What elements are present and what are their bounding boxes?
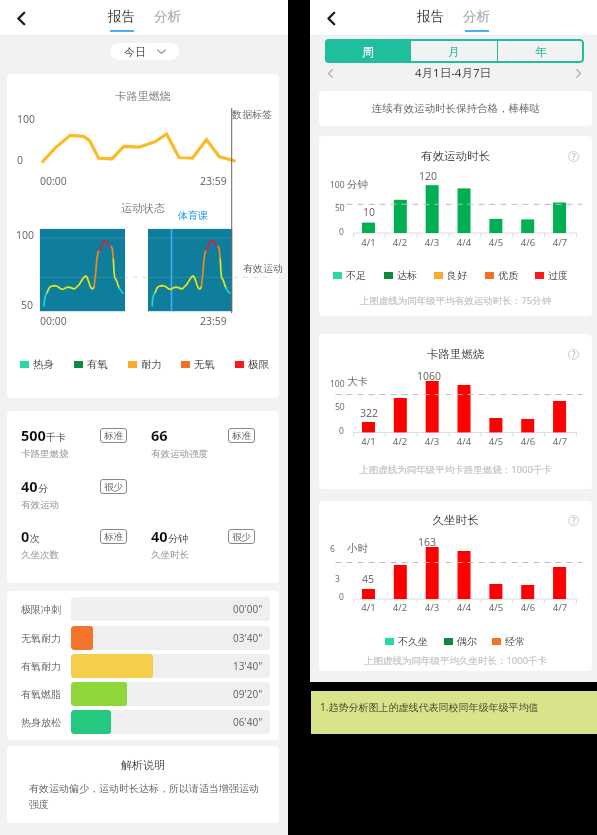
button[interactable]: 月 — [411, 39, 497, 63]
staticText: 有氧 — [87, 358, 108, 371]
button[interactable]: 今日 — [110, 43, 179, 60]
staticText: 40 — [151, 526, 168, 546]
staticText: 163 — [418, 535, 437, 549]
staticText: 偶尔 — [457, 635, 477, 648]
staticText: 标准 — [104, 430, 123, 442]
staticText: 100 — [17, 112, 36, 126]
staticText: 体育课 — [178, 209, 208, 222]
staticText: 卡路里燃烧 — [21, 448, 69, 460]
staticText: 1060 — [417, 369, 442, 383]
staticText: 4/1 — [353, 601, 384, 614]
staticText: ? — [572, 515, 576, 526]
staticText: 03'40" — [233, 631, 263, 645]
staticText: 4月1日-4月7日 — [415, 65, 492, 81]
staticText: 09'20" — [233, 687, 263, 701]
staticText: 4/5 — [480, 236, 512, 249]
button[interactable]: Help — [568, 349, 579, 360]
staticText: ? — [572, 349, 576, 360]
staticText: 4/2 — [384, 236, 416, 249]
staticText: 100 — [16, 228, 35, 242]
staticText: 0 — [21, 526, 30, 546]
staticText: 4/1 — [353, 236, 384, 249]
staticText: 4/2 — [384, 435, 416, 448]
staticText: 过度 — [548, 269, 568, 282]
staticText: 无氧 — [194, 358, 215, 371]
staticText: 4/6 — [512, 236, 544, 249]
staticText: 4/3 — [416, 601, 448, 614]
staticText: 千卡 — [46, 431, 66, 444]
staticText: 4/4 — [448, 236, 480, 249]
button[interactable]: Next week — [571, 66, 585, 80]
staticText: 卡路里燃烧 — [7, 89, 279, 103]
button[interactable]: Back — [9, 6, 33, 30]
staticText: 数据标签 — [232, 108, 272, 121]
staticText: 4/6 — [512, 435, 544, 448]
staticText: 50 — [335, 401, 345, 413]
staticText: 月 — [448, 44, 460, 59]
staticText: 大卡 — [347, 375, 368, 388]
staticText: 不久坐 — [398, 635, 428, 648]
staticText: 热身 — [33, 358, 54, 371]
staticText: 报告 — [108, 8, 135, 25]
staticText: 6 — [330, 543, 335, 555]
staticText: 上图虚线为同年级平均久坐时长：1000千卡 — [319, 654, 592, 667]
button[interactable]: 周 — [325, 39, 410, 63]
staticText: 标准 — [104, 531, 123, 543]
staticText: 100 — [330, 179, 345, 191]
staticText: 连续有效运动时长保持合格，棒棒哒 — [372, 102, 540, 115]
staticText: 次 — [30, 532, 40, 545]
staticText: 500 — [21, 425, 46, 445]
staticText: 0 — [339, 226, 344, 238]
staticText: 上图虚线为同年级平均有效运动时长：75分钟 — [319, 294, 592, 307]
staticText: 今日 — [124, 45, 146, 59]
staticText: 久坐次数 — [21, 549, 59, 561]
staticText: 分 — [38, 482, 48, 495]
staticText: ? — [572, 151, 576, 162]
staticText: 有效运动 — [243, 262, 283, 275]
button[interactable]: 报告 — [108, 8, 135, 32]
staticText: 很少 — [232, 531, 251, 543]
staticText: 4/5 — [480, 435, 512, 448]
staticText: 4/7 — [544, 435, 576, 448]
staticText: 00'00" — [233, 602, 263, 616]
staticText: 久坐时长 — [151, 549, 189, 561]
staticText: 上图虚线为同年级平均卡路里燃烧：1000千卡 — [319, 463, 592, 476]
button[interactable]: 年 — [498, 39, 584, 63]
staticText: 分钟 — [168, 532, 188, 545]
staticText: 周 — [362, 44, 374, 59]
staticText: 有效运动强度 — [151, 448, 208, 460]
button[interactable]: Back — [319, 6, 343, 30]
button[interactable]: Help — [568, 151, 579, 162]
staticText: 标准 — [232, 430, 251, 442]
button[interactable]: Help — [568, 515, 579, 526]
staticText: 23:59 — [200, 314, 227, 328]
staticText: 100 — [330, 378, 345, 390]
staticText: 很少 — [104, 481, 123, 493]
staticText: 40 — [21, 476, 38, 496]
staticText: 热身放松 — [21, 716, 61, 729]
staticText: 45 — [362, 572, 375, 586]
button[interactable]: 分析 — [463, 8, 490, 32]
staticText: 50 — [335, 202, 345, 214]
staticText: 报告 — [417, 8, 444, 25]
staticText: 10 — [363, 205, 376, 219]
staticText: 无氧耐力 — [21, 632, 61, 645]
button[interactable]: 分析 — [154, 8, 181, 30]
staticText: 良好 — [447, 269, 467, 282]
staticText: 4/3 — [416, 435, 448, 448]
staticText: 有效运动偏少，运动时长达标，所以请适当增强运动强度 — [29, 782, 263, 811]
staticText: 有效运动时长 — [319, 149, 592, 163]
staticText: 年 — [535, 44, 547, 59]
staticText: 小时 — [347, 542, 368, 555]
staticText: 4/4 — [448, 601, 480, 614]
staticText: 不足 — [346, 269, 366, 282]
staticText: 120 — [419, 169, 438, 183]
staticText: 优质 — [498, 269, 518, 282]
button[interactable]: 报告 — [417, 8, 444, 30]
staticText: 66 — [151, 425, 168, 445]
staticText: 4/2 — [384, 601, 416, 614]
button[interactable]: Previous week — [323, 66, 338, 81]
staticText: 0 — [339, 591, 344, 603]
staticText: 4/5 — [480, 601, 512, 614]
staticText: 极限冲刺 — [21, 603, 61, 616]
